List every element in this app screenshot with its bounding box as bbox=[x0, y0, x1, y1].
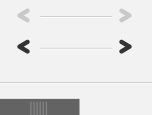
button[interactable]: Next bbox=[119, 8, 132, 22]
button[interactable]: Previous bbox=[17, 8, 30, 22]
button[interactable]: Next bbox=[119, 40, 132, 54]
button[interactable]: Previous bbox=[17, 40, 30, 54]
button[interactable]: Label bbox=[0, 99, 79, 115]
